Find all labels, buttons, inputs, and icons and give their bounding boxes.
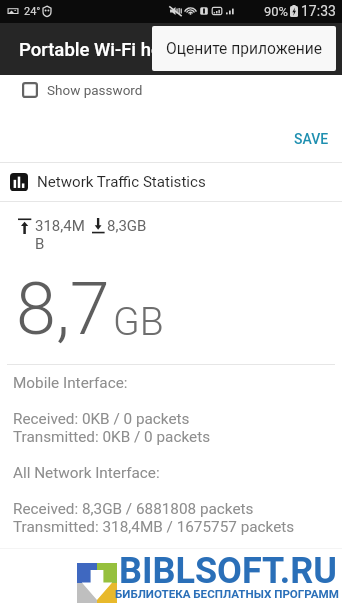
- staticText: 8,7: [16, 267, 110, 351]
- staticText: 90%: [264, 4, 289, 19]
- button[interactable]: SAVE: [288, 126, 334, 152]
- button[interactable]: Network Traffic Statistics: [0, 163, 342, 201]
- staticText: 24°: [24, 5, 41, 18]
- staticText: Portable Wi-Fi hotspot: [19, 39, 205, 61]
- staticText: 17:33: [301, 3, 336, 19]
- staticText: GB: [113, 299, 164, 345]
- staticText: SAVE: [294, 131, 329, 147]
- staticText: Transmitted: 0KB / 0 packets: [13, 428, 211, 446]
- staticText: Mobile Interface:: [13, 374, 128, 392]
- staticText: Оцените приложение: [166, 40, 323, 58]
- staticText: 8,3GB: [107, 217, 147, 235]
- staticText: BIBLSOFT.RU: [119, 550, 337, 592]
- staticText: 318,4MB: [35, 217, 87, 253]
- button[interactable]: Оцените приложение: [152, 26, 336, 71]
- button[interactable]: Show password: [0, 76, 342, 104]
- staticText: Transmitted: 318,4MB / 1675757 packets: [13, 518, 295, 536]
- staticText: БИБЛИОТЕКА БЕСПЛАТНЫХ ПРОГРАММ: [115, 587, 339, 601]
- staticText: Received: 0KB / 0 packets: [13, 410, 190, 428]
- staticText: Network Traffic Statistics: [37, 173, 206, 191]
- staticText: All Network Interface:: [13, 464, 160, 482]
- staticText: Show password: [47, 82, 143, 98]
- staticText: Received: 8,3GB / 6881808 packets: [13, 500, 254, 518]
